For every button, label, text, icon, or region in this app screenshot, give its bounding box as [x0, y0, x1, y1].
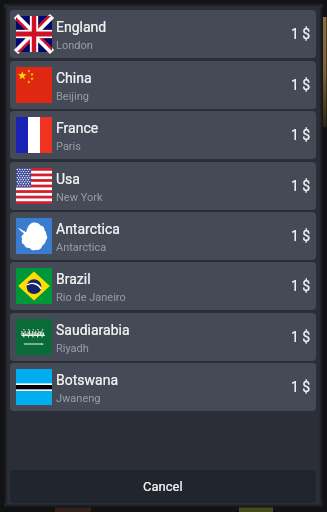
staticText: London — [56, 39, 93, 52]
button[interactable]: Brazil — [10, 262, 316, 310]
staticText: 1 $ — [291, 178, 311, 194]
staticText: New York — [56, 191, 103, 204]
staticText: 1 $ — [291, 379, 311, 395]
staticText: 1 $ — [291, 329, 311, 345]
staticText: 1 $ — [291, 26, 311, 42]
button[interactable]: France — [10, 111, 316, 159]
button[interactable]: Botswana — [10, 363, 316, 411]
staticText: Beijing — [56, 90, 89, 103]
staticText: Paris — [56, 140, 81, 153]
staticText: Riyadh — [56, 342, 89, 355]
staticText: 1 $ — [291, 77, 311, 93]
staticText: Botswana — [56, 372, 118, 388]
staticText: Saudiarabia — [56, 322, 130, 338]
button[interactable]: Usa — [10, 162, 316, 210]
staticText: Usa — [56, 171, 80, 187]
staticText: Brazil — [56, 271, 91, 287]
staticText: England — [56, 19, 107, 35]
button[interactable]: China — [10, 61, 316, 109]
staticText: Antarctica — [56, 241, 107, 254]
button[interactable]: Saudiarabia — [10, 313, 316, 361]
button[interactable]: Cancel — [10, 470, 316, 503]
staticText: 1 $ — [291, 278, 311, 294]
button[interactable]: Antarctica — [10, 212, 316, 260]
staticText: 1 $ — [291, 127, 311, 143]
staticText: China — [56, 70, 92, 86]
staticText: France — [56, 120, 99, 136]
button[interactable]: England — [10, 10, 316, 58]
staticText: Jwaneng — [56, 392, 101, 405]
staticText: Rio de Janeiro — [56, 291, 126, 304]
staticText: Antarctica — [56, 221, 120, 237]
staticText: Cancel — [143, 479, 183, 494]
staticText: 1 $ — [291, 228, 311, 244]
